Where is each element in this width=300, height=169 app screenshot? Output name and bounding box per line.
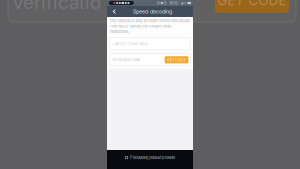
staticText: GET CODE [217, 0, 286, 9]
staticText: +86 (10) 7748-2814 [112, 41, 148, 46]
staticText: Рекомендуемый режим [130, 155, 175, 160]
staticText: This function is only for experienced in… [109, 19, 189, 34]
staticText: GET CODE [167, 58, 186, 62]
staticText: verificatio [13, 0, 101, 14]
button[interactable]: Back [108, 6, 121, 17]
staticText: Speed decoding [133, 8, 172, 15]
staticText: 10:52 [170, 1, 178, 5]
staticText: verification code [112, 57, 140, 62]
button[interactable]: GET CODE [165, 56, 188, 63]
